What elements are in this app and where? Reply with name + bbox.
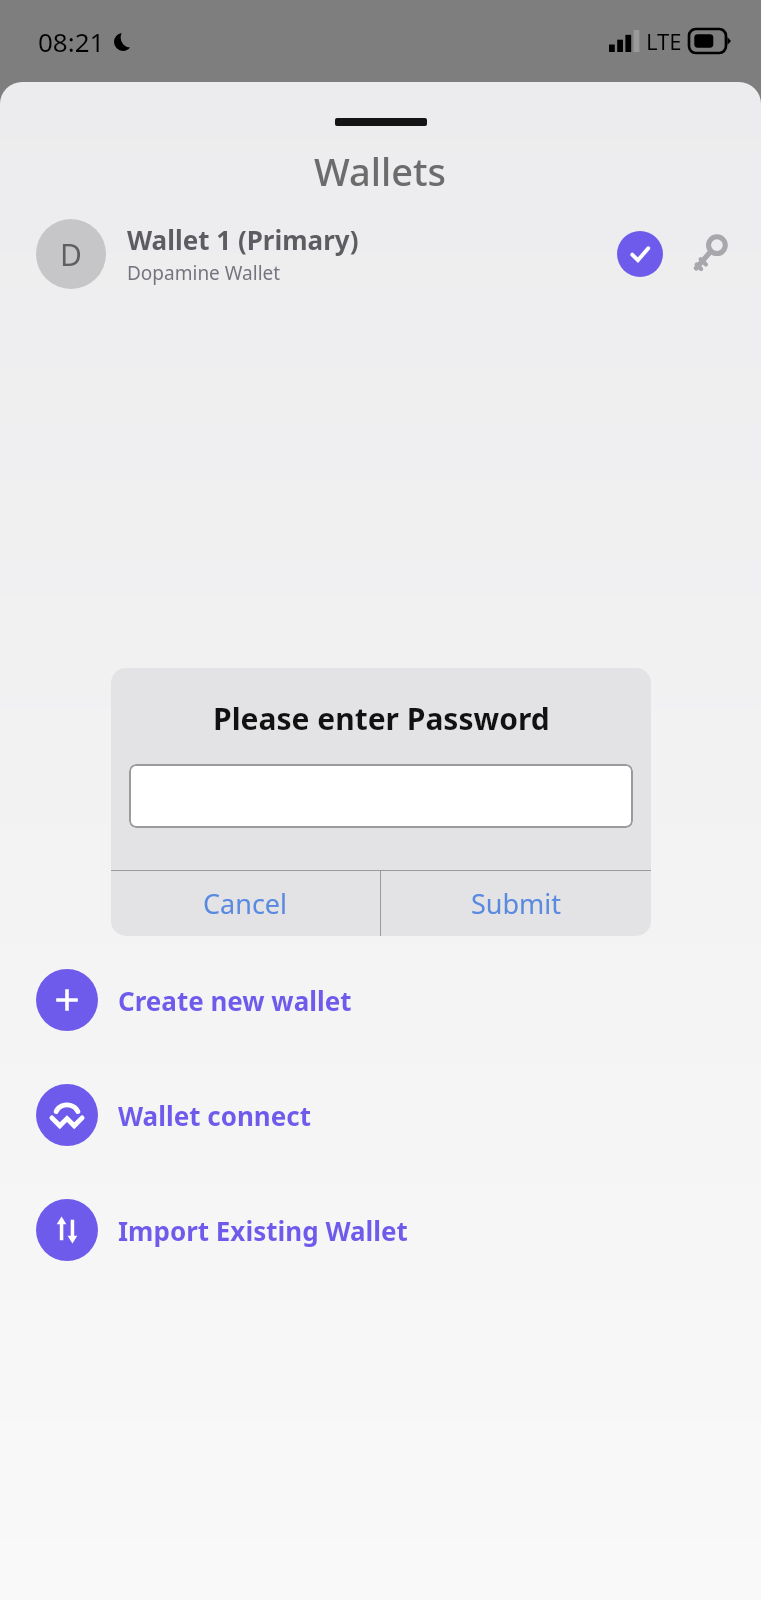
staticText: Wallet connect — [118, 1098, 311, 1133]
staticText: D — [60, 234, 82, 275]
button[interactable]: Import Existing Wallet — [0, 1195, 761, 1265]
staticText: Wallet 1 (Primary) — [127, 222, 359, 257]
staticText: Create new wallet — [118, 983, 352, 1018]
button[interactable]: Cancel — [111, 871, 380, 936]
staticText: Import Existing Wallet — [118, 1213, 408, 1248]
button[interactable]: Show private key — [685, 230, 733, 278]
staticText: 08:21 — [38, 24, 105, 59]
button[interactable]: Wallet connect — [0, 1080, 761, 1150]
button[interactable] — [129, 764, 633, 828]
button[interactable]: Submit — [381, 871, 651, 936]
staticText: LTE — [646, 26, 682, 56]
staticText: Wallets — [314, 145, 447, 197]
button[interactable]: D — [0, 211, 761, 297]
staticText: Submit — [471, 885, 562, 922]
staticText: Dopamine Wallet — [127, 260, 281, 286]
staticText: Please enter Password — [213, 698, 550, 739]
button[interactable]: Selected wallet — [617, 231, 663, 277]
button[interactable]: Create new wallet — [0, 965, 761, 1035]
staticText: Cancel — [203, 885, 288, 922]
